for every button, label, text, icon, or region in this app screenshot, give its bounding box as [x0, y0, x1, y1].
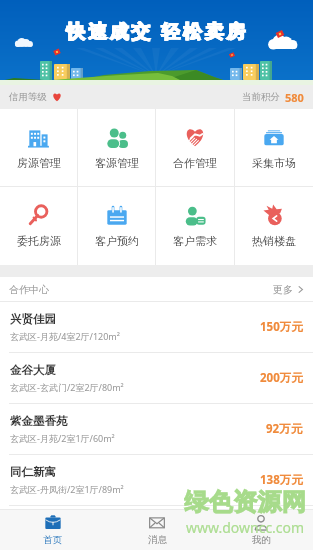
button[interactable]: 客户需求 — [156, 187, 234, 265]
staticText: 兴贤佳园 — [10, 312, 56, 326]
staticText: 快速成交 — [67, 20, 154, 43]
staticText: 我的 — [252, 534, 271, 546]
staticText: 玄武区-月苑/4室2厅/120m² — [10, 330, 120, 342]
staticText: 玄武区-玄武门/2室2厅/80m² — [10, 381, 124, 393]
button[interactable]: 合作管理 — [156, 109, 234, 186]
staticText: 玄武区-月苑/2室1厅/60m² — [10, 432, 115, 444]
staticText: 绿色资源网 — [184, 487, 306, 517]
staticText: 150万元 — [260, 319, 303, 335]
staticText: 采集市场 — [252, 156, 296, 170]
staticText: 200万元 — [260, 370, 303, 386]
staticText: 同仁新寓 — [10, 465, 56, 479]
staticText: 快速成交 — [66, 20, 153, 43]
button[interactable]: 客户预约 — [78, 187, 155, 265]
staticText: 玄武区-丹凤街/2室1厅/89m² — [10, 483, 124, 495]
staticText: 更多 — [273, 283, 293, 296]
button[interactable]: 我的 — [209, 510, 313, 550]
staticText: 92万元 — [266, 421, 303, 437]
staticText: 信用等级 — [9, 91, 47, 103]
button[interactable]: 更多 — [273, 279, 304, 300]
button[interactable]: 客源管理 — [78, 109, 155, 186]
staticText: 委托房源 — [17, 234, 61, 248]
staticText: 138万元 — [260, 472, 303, 488]
staticText: 热销楼盘 — [252, 234, 296, 248]
button[interactable]: 房源管理 — [0, 109, 77, 186]
button[interactable]: 兴贤佳园 — [0, 302, 313, 352]
button[interactable]: 热销楼盘 — [235, 187, 313, 265]
button[interactable]: 同仁新寓 — [0, 455, 313, 505]
staticText: 客户预约 — [95, 234, 139, 248]
staticText: 首页 — [43, 534, 62, 546]
staticText: 合作管理 — [173, 156, 217, 170]
staticText: 轻松卖房 — [161, 20, 248, 43]
staticText: 轻松卖房 — [161, 20, 248, 43]
staticText: 紫金墨香苑 — [10, 414, 68, 428]
button[interactable]: 首页 — [0, 510, 105, 550]
staticText: 客源管理 — [95, 156, 139, 170]
staticText: 金谷大厦 — [10, 363, 56, 377]
button[interactable]: 金谷大厦 — [0, 353, 313, 403]
staticText: 客户需求 — [173, 234, 217, 248]
staticText: 合作中心 — [9, 283, 49, 296]
staticText: 当前积分 — [242, 91, 280, 103]
button[interactable]: 采集市场 — [235, 109, 313, 186]
staticText: 轻松卖房 — [162, 20, 249, 43]
staticText: 快速成交 — [66, 20, 153, 43]
staticText: www.downcc.com — [186, 518, 305, 537]
staticText: 580 — [285, 90, 304, 105]
button[interactable]: 消息 — [105, 510, 209, 550]
staticText: 房源管理 — [17, 156, 61, 170]
button[interactable]: 委托房源 — [0, 187, 77, 265]
button[interactable]: 紫金墨香苑 — [0, 404, 313, 454]
staticText: 消息 — [148, 534, 167, 546]
